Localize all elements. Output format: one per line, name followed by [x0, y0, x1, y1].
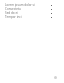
- button[interactable]: Tempor inci: [0, 15, 64, 19]
- button[interactable]: Consectetu: [0, 7, 64, 11]
- button[interactable]: Add: [54, 76, 57, 79]
- staticText: Tempor inci: [5, 15, 22, 19]
- staticText: Sed do ei: [5, 11, 18, 15]
- button[interactable]: Lorem ipsum dolor si: [0, 3, 64, 7]
- button[interactable]: Sed do ei: [0, 11, 64, 15]
- staticText: Consectetu: [5, 7, 21, 11]
- staticText: Lorem ipsum dolor si: [5, 3, 35, 7]
